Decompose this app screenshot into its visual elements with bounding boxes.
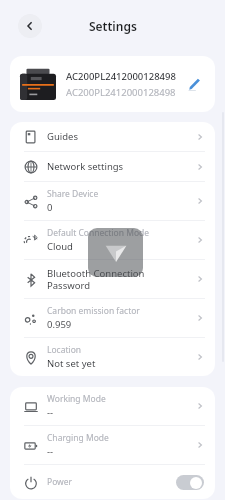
button[interactable]: Power toggle: [176, 475, 204, 490]
button[interactable]: Bluetooth Connection Password: [10, 260, 215, 298]
button[interactable]: Location: [10, 338, 215, 376]
staticText: Working Mode: [47, 393, 106, 405]
button[interactable]: Back: [18, 14, 42, 38]
button[interactable]: Guides: [10, 122, 215, 151]
staticText: Guides: [47, 130, 78, 143]
staticText: Not set yet: [47, 357, 96, 370]
button[interactable]: Carbon emission factor: [10, 299, 215, 337]
button[interactable]: Charging Mode: [10, 426, 215, 464]
staticText: Settings: [89, 18, 137, 34]
staticText: AC200PL2412000128498: [66, 70, 176, 83]
button[interactable]: Edit name: [183, 73, 205, 95]
button[interactable]: Network settings: [10, 152, 215, 181]
button[interactable]: Working Mode: [10, 387, 215, 425]
staticText: Cloud: [47, 240, 73, 253]
staticText: Bluetooth Connection Password: [47, 267, 145, 291]
staticText: 0: [47, 201, 53, 214]
staticText: Charging Mode: [47, 432, 109, 444]
staticText: Carbon emission factor: [47, 305, 140, 317]
staticText: --: [47, 445, 54, 458]
staticText: Share Device: [47, 188, 99, 200]
button[interactable]: Share Device: [10, 182, 215, 220]
button[interactable]: Power: [10, 465, 215, 499]
staticText: --: [47, 406, 54, 419]
staticText: Default Connection Mode: [47, 227, 150, 239]
button[interactable]: AC200PL2412000128498: [10, 56, 215, 112]
staticText: 0.959: [47, 318, 72, 331]
button[interactable]: Default Connection Mode: [10, 221, 215, 259]
staticText: Power: [47, 476, 73, 488]
staticText: Network settings: [47, 160, 124, 173]
staticText: Location: [47, 344, 82, 356]
staticText: AC200PL2412000128498: [66, 86, 176, 99]
